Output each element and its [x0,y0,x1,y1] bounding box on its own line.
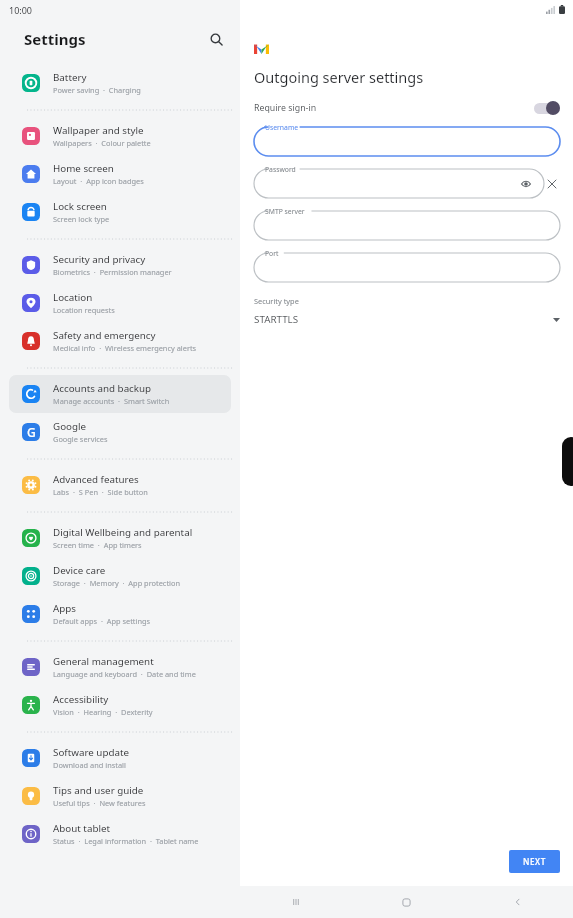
staticText: Battery [53,71,87,84]
staticText: NEXT [523,856,546,867]
staticText: Status · Legal information · Tablet name [53,836,199,846]
staticText: Useful tips · New features [53,798,146,808]
staticText: Settings [24,29,86,49]
button[interactable]: SMTP server [254,211,560,240]
staticText: Location requests [53,305,115,315]
staticText: Require sign-in [254,102,317,114]
staticText: Layout · App icon badges [53,176,144,186]
staticText: Wallpapers · Colour palette [53,138,151,148]
staticText: Vision · Hearing · Dexterity [53,707,153,717]
button[interactable]: Username [254,127,560,156]
staticText: Location [53,291,93,304]
staticText: Username [265,123,299,132]
staticText: Accounts and backup [53,382,152,395]
staticText: Port [265,249,279,258]
staticText: Software update [53,746,129,759]
staticText: STARTTLS [254,313,299,326]
button[interactable]: Password [254,169,544,198]
staticText: G [27,424,36,440]
button[interactable]: Clear [544,176,560,192]
button[interactable]: Wallpaper and style [9,117,231,155]
button[interactable]: G [9,413,231,451]
button[interactable]: Location [9,284,231,322]
button[interactable]: Lock screen [9,193,231,231]
button[interactable]: Port [254,253,560,282]
button[interactable]: NEXT [509,850,560,873]
staticText: Labs · S Pen · Side button [53,487,148,497]
staticText: Biometrics · Permission manager [53,267,172,277]
button[interactable]: Security type [240,296,573,326]
staticText: 10:00 [9,4,33,16]
button[interactable]: Search [205,28,227,50]
button[interactable]: Digital Wellbeing and parental controls [9,519,231,557]
staticText: Language and keyboard · Date and time [53,669,196,679]
staticText: Digital Wellbeing and parental controls [53,526,223,539]
staticText: Google [53,420,87,433]
button[interactable]: Require sign-in [240,101,573,115]
button[interactable]: Apps [9,595,231,633]
staticText: Medical info · Wireless emergency alerts [53,343,197,353]
button[interactable]: Recents [240,886,351,918]
staticText: Safety and emergency [53,329,156,342]
button[interactable]: Accessibility [9,686,231,724]
staticText: Advanced features [53,473,139,486]
button[interactable]: Home [351,886,462,918]
button[interactable]: Advanced features [9,466,231,504]
button[interactable]: Security and privacy [9,246,231,284]
staticText: Download and install [53,760,126,770]
staticText: Storage · Memory · App protection [53,578,181,588]
staticText: Tips and user guide [53,784,144,797]
staticText: Home screen [53,162,114,175]
button[interactable]: Software update [9,739,231,777]
button[interactable]: Show password [519,177,533,191]
button[interactable]: Accounts and backup [9,375,231,413]
staticText: Google services [53,434,108,444]
button[interactable]: Battery [9,64,231,102]
staticText: Screen lock type [53,214,110,224]
button[interactable]: Device care [9,557,231,595]
staticText: Power saving · Charging [53,85,141,95]
staticText: Apps [53,602,77,615]
button[interactable]: Tips and user guide [9,777,231,815]
staticText: General management [53,655,154,668]
staticText: Device care [53,564,106,577]
button[interactable]: Home screen [9,155,231,193]
staticText: Wallpaper and style [53,124,144,137]
button[interactable]: General management [9,648,231,686]
staticText: SMTP server [265,207,305,216]
staticText: Security type [254,296,299,306]
button[interactable]: Safety and emergency [9,322,231,360]
staticText: Default apps · App settings [53,616,151,626]
staticText: Outgoing server settings [254,67,424,87]
button[interactable]: About tablet [9,815,231,853]
staticText: Lock screen [53,200,107,213]
staticText: About tablet [53,822,110,835]
staticText: Manage accounts · Smart Switch [53,396,170,406]
staticText: Accessibility [53,693,109,706]
staticText: Security and privacy [53,253,146,266]
staticText: Password [265,165,296,174]
staticText: Screen time · App timers [53,540,142,550]
